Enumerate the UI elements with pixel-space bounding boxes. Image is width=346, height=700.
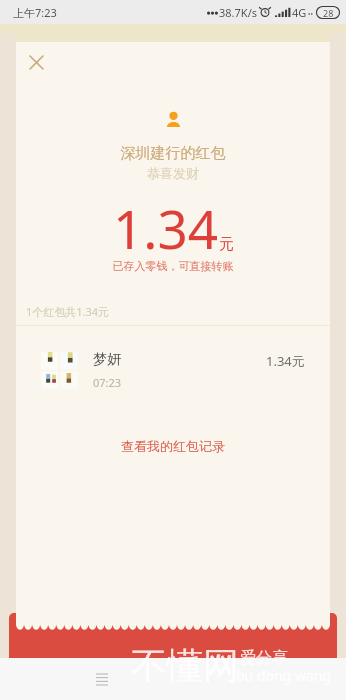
staticText: 38.7K/s [219, 5, 257, 20]
staticText: 不懂网 [131, 643, 239, 688]
button[interactable]: Recents [83, 660, 121, 698]
staticText: 1.34元 [266, 352, 305, 370]
staticText: 深圳建行的红包 [16, 144, 330, 163]
staticText: 07:23 [93, 375, 122, 390]
staticText: 查看我的红包记录 [121, 438, 225, 454]
button[interactable]: 梦妍 [16, 338, 330, 402]
staticText: 上午7:23 [13, 5, 57, 20]
staticText: 已存入零钱，可直接转账 [16, 259, 330, 273]
button[interactable]: Close [22, 48, 50, 76]
staticText: 1个红包共1.34元 [26, 304, 110, 319]
staticText: 爱分享 [240, 648, 288, 668]
staticText: 1.34 [113, 192, 219, 264]
staticText: 28 [323, 7, 334, 19]
staticText: 梦妍 [93, 351, 121, 369]
staticText: 恭喜发财 [16, 165, 330, 181]
staticText: 4G [292, 5, 307, 20]
button[interactable]: 查看我的红包记录 [111, 434, 235, 458]
staticText: 元 [219, 235, 234, 254]
